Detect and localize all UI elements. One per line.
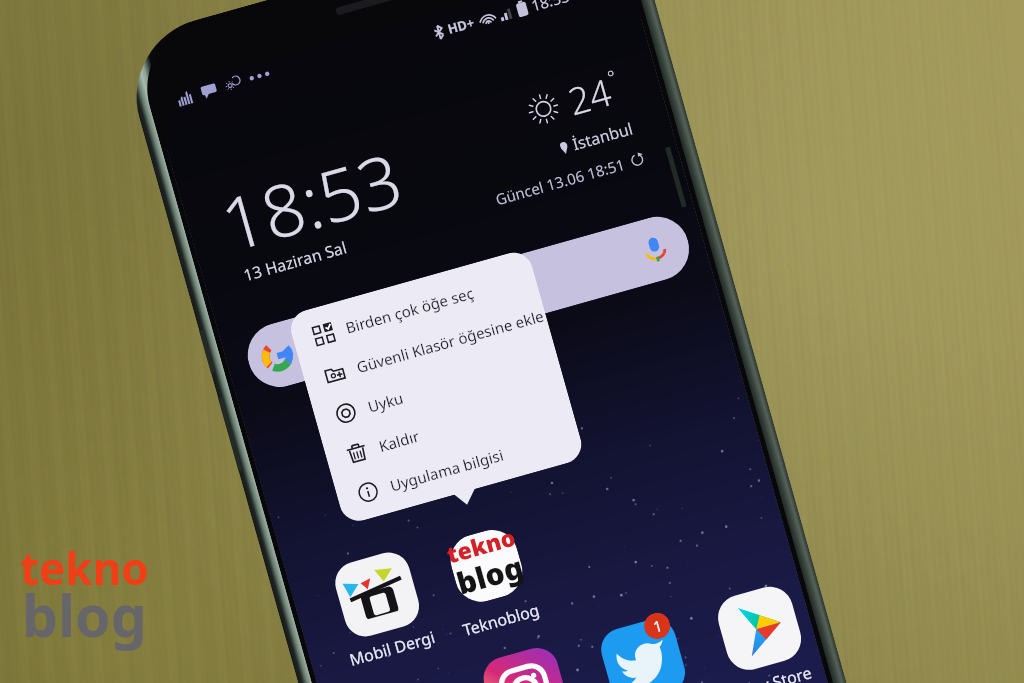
staticText: blog [452,546,528,604]
button[interactable]: Birden çok öğe seç [288,255,540,362]
staticText: Mobil Dergi [347,626,438,671]
staticText: Güvenli Klasör öğesine ekle [354,305,546,377]
button[interactable]: Güvenli Klasör öğesine ekle [299,294,551,401]
staticText: 18:53 [210,129,413,272]
button[interactable]: Google search [240,209,696,394]
staticText: Teknoblog [460,599,542,641]
button[interactable]: 1 [596,614,690,683]
staticText: blog [22,576,147,654]
staticText: HD+ [445,13,476,38]
staticText: 13 Haziran Sal [241,236,350,286]
button[interactable]: tekno [438,519,542,641]
staticText: İstanbul [570,117,635,155]
staticText: Güncel 13.06 18:51 [493,154,627,209]
button[interactable] [479,643,572,683]
button[interactable]: Uygulama bilgisi [333,413,584,520]
staticText: ° [605,64,619,90]
staticText: 1 [651,615,665,637]
staticText: Kaldır [376,426,421,456]
staticText: 24 [562,65,617,125]
staticText: Birden çok öğe seç [343,282,477,338]
button[interactable]: Play Store [713,581,814,683]
button[interactable]: Uyku [310,334,562,441]
staticText: Play Store [736,661,814,683]
staticText: tekno [20,538,149,598]
staticText: tekno [443,520,519,570]
button[interactable]: Kaldır [321,373,573,480]
staticText: Uygulama bilgisi [388,445,506,495]
staticText: Uyku [365,388,405,417]
button[interactable]: Mobil Dergi [324,546,438,671]
staticText: 18:53 [529,0,572,15]
